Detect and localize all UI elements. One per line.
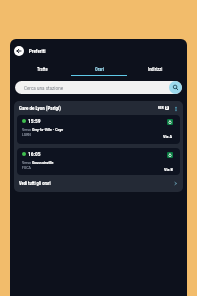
staticText: 16:05 bbox=[28, 151, 41, 157]
staticText: Verso bbox=[22, 160, 32, 165]
button[interactable]: Orari bbox=[71, 63, 127, 76]
button[interactable]: Vedi tutti gli orari bbox=[19, 175, 178, 192]
staticText: Tratte bbox=[37, 67, 48, 72]
button[interactable]: Search bbox=[169, 81, 182, 94]
button[interactable]: Indirizzi bbox=[127, 63, 183, 76]
staticText: Orari bbox=[95, 67, 104, 72]
staticText: Via B bbox=[164, 167, 173, 172]
staticText: Indirizzi bbox=[148, 67, 163, 72]
staticText: Vedi tutti gli orari bbox=[19, 181, 51, 186]
staticText: Gare de Lyon (Parigi) bbox=[19, 105, 61, 111]
staticText: Cerca una stazione bbox=[24, 85, 64, 91]
staticText: D bbox=[166, 106, 168, 110]
staticText: Preferiti bbox=[29, 48, 46, 54]
staticText: FUCA bbox=[22, 165, 31, 170]
button[interactable]: 15:59 bbox=[17, 115, 180, 144]
staticText: Verso bbox=[22, 127, 32, 132]
staticText: Goussainville bbox=[32, 160, 54, 165]
button[interactable]: Cerca una stazione bbox=[15, 81, 182, 94]
button[interactable]: More options bbox=[171, 104, 180, 113]
staticText: 15:59 bbox=[28, 118, 41, 124]
staticText: RER bbox=[158, 106, 164, 110]
button[interactable]: Back bbox=[14, 46, 24, 56]
staticText: LGRN bbox=[22, 132, 31, 137]
button[interactable]: 16:05 bbox=[17, 148, 180, 175]
staticText: Orry-la-Ville - Coye bbox=[32, 127, 64, 132]
button[interactable]: Tratte bbox=[14, 63, 71, 76]
staticText: Via A bbox=[163, 134, 173, 139]
